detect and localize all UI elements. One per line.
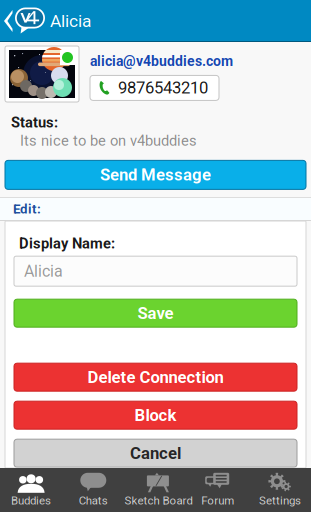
button[interactable]: Sketch Board: [124, 468, 187, 512]
button[interactable]: Cancel: [14, 439, 297, 467]
staticText: Buddies: [11, 494, 51, 507]
button[interactable]: Buddies: [0, 468, 62, 512]
staticText: Alicia: [50, 11, 91, 31]
button[interactable]: Send Message: [5, 160, 306, 189]
button[interactable]: Save: [14, 299, 297, 327]
staticText: Display Name:: [19, 235, 115, 252]
staticText: Save: [137, 303, 173, 323]
staticText: Delete Connection: [87, 367, 223, 387]
staticText: Forum: [201, 494, 234, 507]
button[interactable]: Chats: [62, 468, 124, 512]
button[interactable]: 9876543210: [90, 75, 219, 100]
button[interactable]: Forum: [187, 468, 249, 512]
staticText: Settings: [259, 494, 301, 507]
button[interactable]: Back: [0, 0, 47, 42]
button[interactable]: Block: [14, 401, 297, 429]
button[interactable]: Settings: [249, 468, 311, 512]
staticText: 9876543210: [118, 78, 208, 98]
staticText: Edit:: [13, 201, 41, 217]
button[interactable]: Delete Connection: [14, 363, 297, 391]
staticText: Chats: [79, 494, 108, 507]
staticText: Its nice to be on v4buddies: [20, 132, 197, 149]
staticText: Cancel: [130, 443, 181, 463]
staticText: Block: [134, 405, 176, 425]
staticText: Status:: [11, 114, 58, 131]
staticText: Sketch Board: [124, 494, 192, 507]
staticText: Alicia: [24, 262, 63, 281]
staticText: Send Message: [100, 165, 211, 185]
staticText: alicia@v4buddies.com: [90, 53, 233, 69]
